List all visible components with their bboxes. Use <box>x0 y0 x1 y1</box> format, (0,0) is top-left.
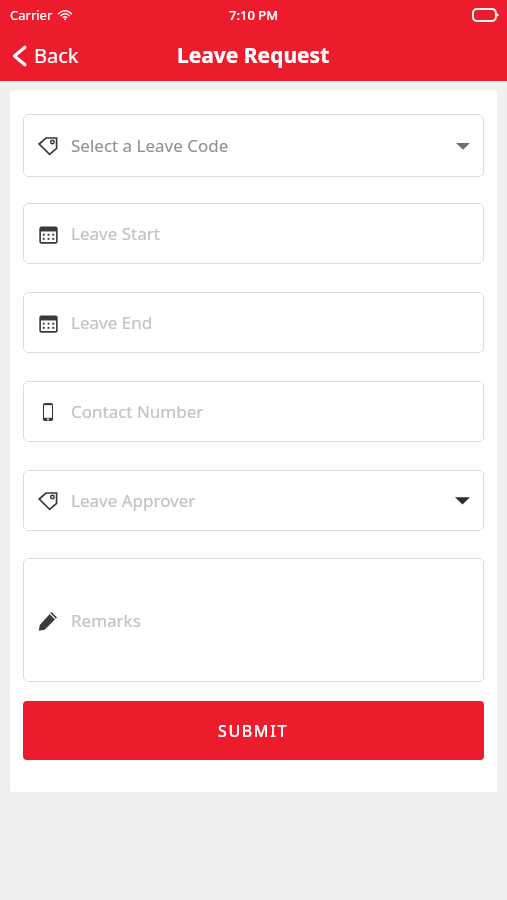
staticText: Remarks <box>71 609 141 632</box>
button[interactable]: Select a Leave Code <box>23 114 484 177</box>
staticText: Leave Start <box>71 222 160 245</box>
staticText: Contact Number <box>71 400 204 423</box>
staticText: Leave Request <box>177 41 330 70</box>
staticText: Leave End <box>71 311 153 334</box>
staticText: Carrier <box>10 6 53 24</box>
button[interactable]: Leave Start <box>23 203 484 264</box>
button[interactable]: Back <box>0 36 91 75</box>
button[interactable]: Contact Number <box>23 381 484 442</box>
button[interactable]: Leave End <box>23 292 484 353</box>
staticText: SUBMIT <box>218 720 289 742</box>
staticText: Select a Leave Code <box>71 134 229 157</box>
button[interactable]: SUBMIT <box>23 701 484 760</box>
staticText: Back <box>34 42 79 69</box>
button[interactable]: Leave Approver <box>23 470 484 531</box>
button[interactable]: Remarks <box>23 558 484 682</box>
staticText: 7:10 PM <box>229 6 279 24</box>
staticText: Leave Approver <box>71 489 196 512</box>
